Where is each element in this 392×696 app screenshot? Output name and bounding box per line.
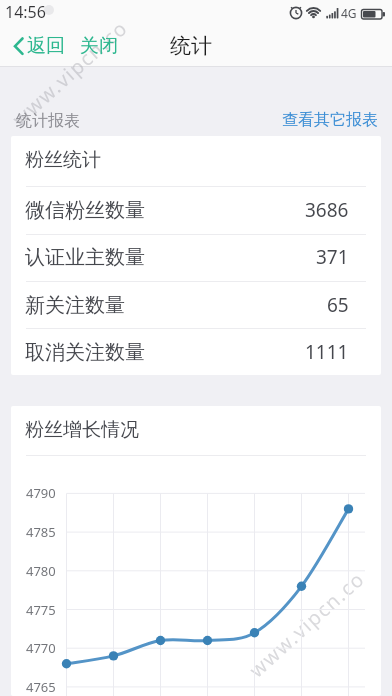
staticText: 1111	[305, 339, 349, 365]
staticText: 查看其它报表	[282, 110, 378, 130]
staticText: 4G	[341, 5, 357, 21]
staticText: 统计报表	[16, 111, 80, 131]
button[interactable]	[76, 30, 120, 62]
staticText: 认证业主数量	[25, 245, 145, 270]
staticText: 粉丝统计	[25, 148, 101, 172]
staticText: 返回	[27, 34, 65, 58]
staticText: 3686	[305, 197, 349, 223]
staticText: 4775	[26, 601, 56, 619]
staticText: 关闭	[80, 34, 118, 58]
staticText: www.vipcn.com	[243, 556, 381, 684]
staticText: 4780	[26, 562, 56, 580]
button[interactable]	[10, 30, 70, 62]
staticText: 统计	[170, 33, 212, 59]
staticText: 新关注数量	[25, 293, 125, 318]
staticText: 4765	[26, 678, 56, 696]
staticText: 14:56	[5, 1, 46, 23]
staticText: 4790	[26, 484, 56, 502]
staticText: 粉丝增长情况	[25, 418, 139, 442]
staticText: 371	[316, 244, 349, 270]
staticText: 取消关注数量	[25, 340, 145, 365]
staticText: 微信粉丝数量	[25, 198, 145, 223]
staticText: 4770	[26, 639, 56, 657]
staticText: 4785	[26, 523, 56, 541]
staticText: www.vipcn.com	[6, 5, 144, 133]
staticText: 65	[327, 292, 349, 318]
button[interactable]	[270, 104, 386, 136]
